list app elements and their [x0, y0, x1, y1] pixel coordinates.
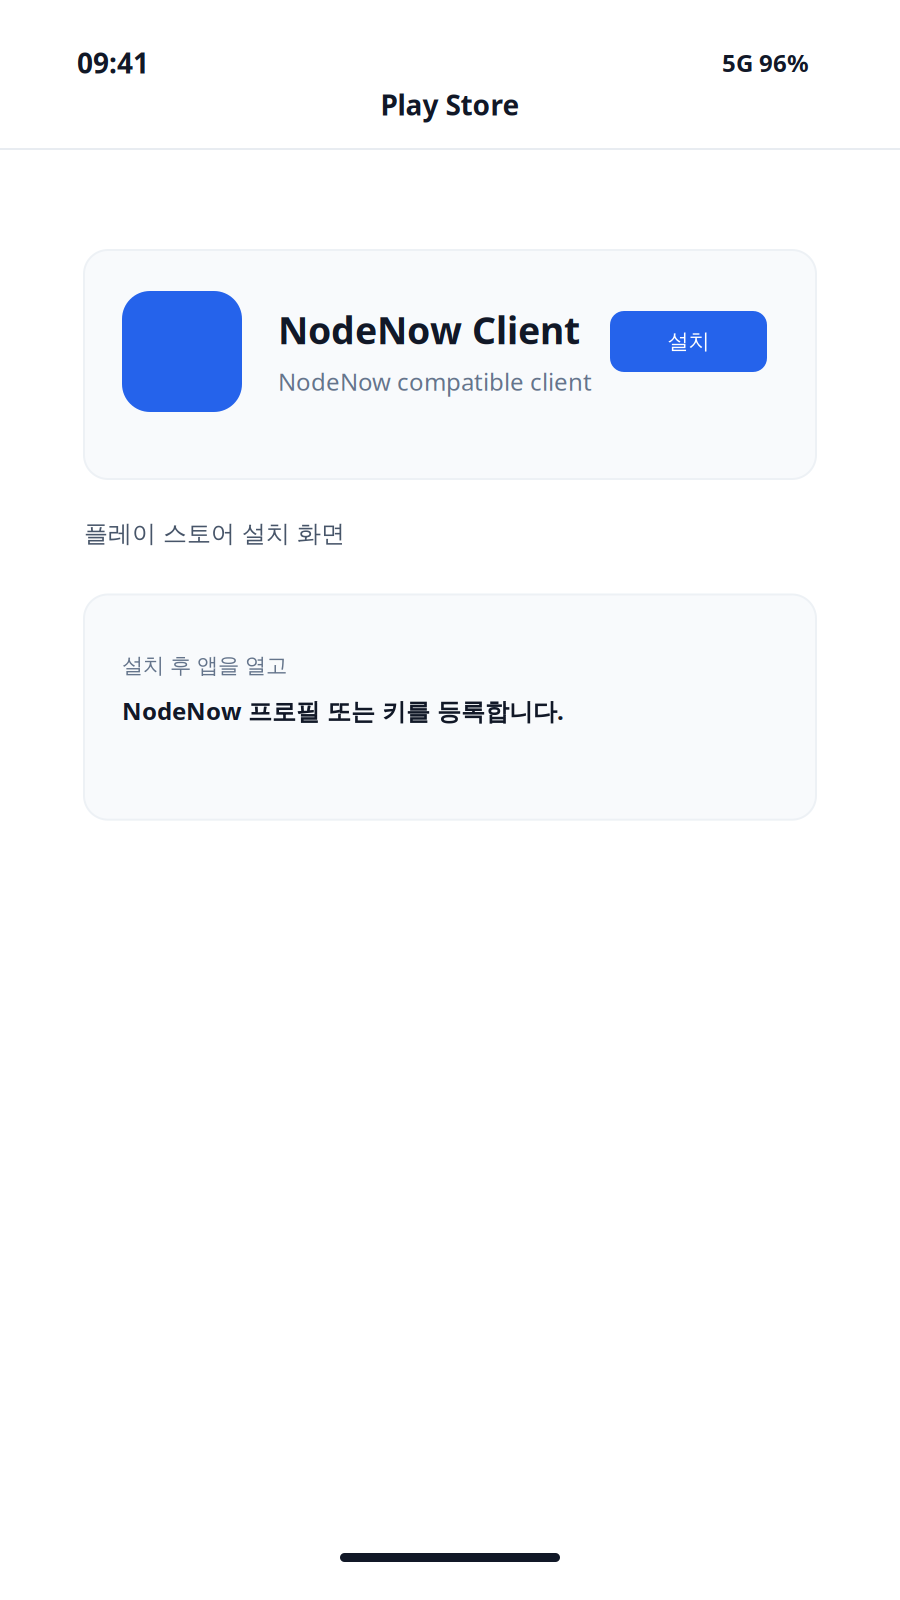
staticText: NodeNow compatible client — [278, 366, 592, 397]
staticText: 설치 — [667, 328, 709, 355]
staticText: 설치 후 앱을 열고 — [122, 652, 287, 679]
staticText: Play Store — [380, 86, 519, 123]
staticText: NodeNow Client — [278, 305, 580, 355]
button[interactable]: 설치 — [610, 311, 767, 372]
staticText: NodeNow 프로필 또는 키를 등록합니다. — [122, 695, 564, 727]
staticText: 09:41 — [77, 44, 149, 81]
staticText: 플레이 스토어 설치 화면 — [84, 519, 345, 548]
staticText: 5G 96% — [722, 47, 809, 79]
